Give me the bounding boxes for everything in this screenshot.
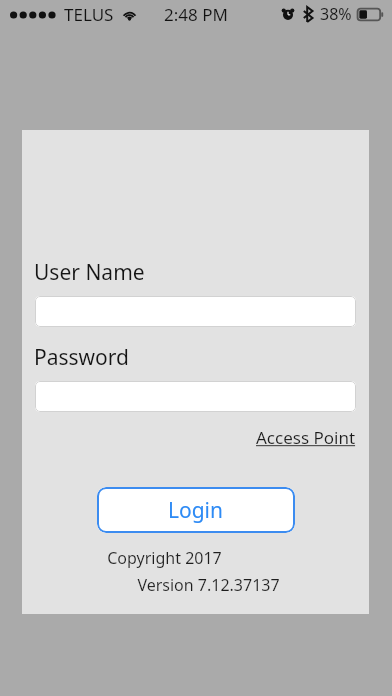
staticText: Version 7.12.37137 bbox=[48, 574, 369, 596]
button[interactable]: Access Point bbox=[256, 426, 356, 449]
staticText: TELUS bbox=[64, 3, 114, 26]
staticText: 38% bbox=[320, 3, 352, 25]
staticText: 2:48 PM bbox=[164, 3, 228, 26]
staticText: Login bbox=[168, 496, 224, 525]
staticText: Password bbox=[34, 343, 129, 372]
button[interactable]: Login bbox=[97, 487, 295, 533]
staticText: Access Point bbox=[256, 426, 356, 449]
button[interactable]: Password input bbox=[35, 381, 356, 412]
staticText: Copyright 2017 bbox=[22, 547, 307, 569]
button[interactable]: User Name input bbox=[35, 296, 356, 327]
staticText: User Name bbox=[34, 258, 145, 287]
